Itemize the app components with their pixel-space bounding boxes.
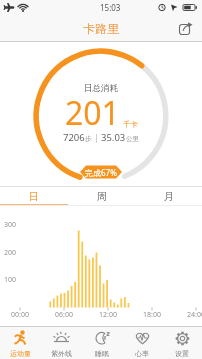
staticText: 06:00	[55, 310, 73, 320]
staticText: 周	[97, 190, 107, 203]
button[interactable]: 心率	[122, 327, 162, 359]
button[interactable]: 睡眠	[82, 327, 122, 359]
staticText: 公里	[126, 135, 139, 143]
button[interactable]: 运动量	[0, 327, 41, 359]
staticText: 12:00	[99, 310, 117, 320]
staticText: 卡路里	[83, 21, 119, 36]
staticText: 心率	[135, 349, 149, 358]
staticText: 千卡	[123, 120, 138, 129]
staticText: 月	[164, 190, 174, 203]
staticText: 7206	[63, 131, 85, 144]
button[interactable]: 日	[0, 186, 68, 206]
staticText: 日	[29, 190, 39, 203]
staticText: 设置	[175, 349, 189, 358]
staticText: 201	[65, 91, 120, 135]
staticText: 日总消耗	[84, 83, 118, 94]
staticText: |	[94, 132, 99, 144]
staticText: 24:00	[187, 310, 202, 320]
button[interactable]: 设置	[162, 327, 202, 359]
staticText: 300	[4, 220, 17, 230]
staticText: 步	[85, 135, 92, 143]
staticText: 35.03	[101, 131, 126, 144]
button[interactable]: 紫外线	[41, 327, 82, 359]
staticText: 100	[4, 275, 17, 285]
button[interactable]: 月	[135, 186, 202, 206]
staticText: 完成67%	[85, 167, 117, 178]
staticText: 18:00	[143, 310, 161, 320]
staticText: 15:03	[100, 2, 121, 13]
staticText: 紫外线	[51, 349, 72, 358]
staticText: 运动量	[10, 349, 31, 358]
staticText: 00:00	[11, 310, 29, 320]
button[interactable]	[172, 14, 200, 42]
staticText: 睡眠	[95, 349, 109, 358]
button[interactable]: 周	[68, 186, 135, 206]
staticText: 200	[4, 248, 17, 258]
